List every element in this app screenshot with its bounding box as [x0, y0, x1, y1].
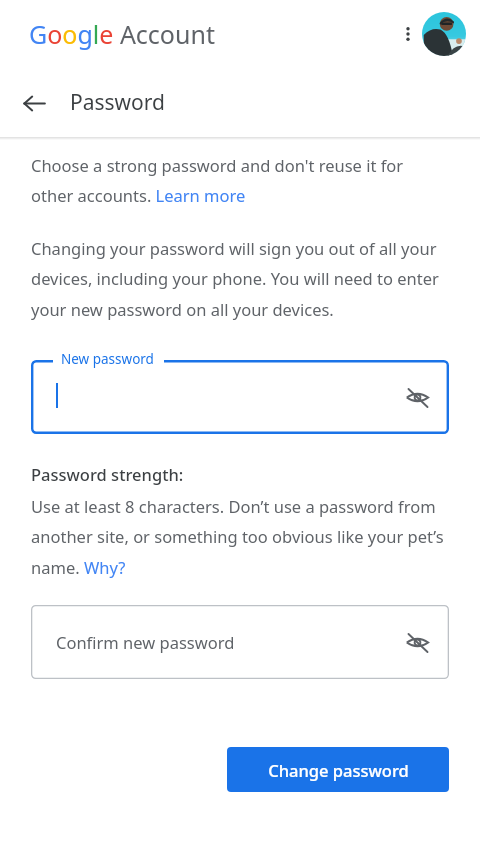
button[interactable]: Back	[12, 81, 56, 125]
staticText: Confirm new password	[56, 631, 235, 653]
button[interactable]: New password	[31, 350, 449, 434]
staticText: Password strength:	[31, 463, 184, 485]
button[interactable]: More options	[388, 14, 428, 54]
button[interactable]: Change password	[227, 747, 449, 792]
button[interactable]: Google Account	[29, 17, 215, 51]
button[interactable]: Google Account profile photo	[422, 12, 466, 56]
staticText: Password	[70, 88, 165, 117]
staticText: Change password	[268, 759, 409, 781]
staticText: Choose a strong password and don't reuse…	[31, 154, 449, 207]
staticText: Changing your password will sign you out…	[31, 237, 449, 321]
staticText: New password	[61, 350, 154, 368]
staticText: Use at least 8 characters. Don’t use a p…	[31, 495, 449, 579]
staticText: Google Account	[29, 17, 215, 51]
button[interactable]: Show password	[394, 374, 440, 420]
button[interactable]: Show confirm password	[394, 619, 440, 665]
button[interactable]: Confirm new password	[31, 605, 449, 679]
